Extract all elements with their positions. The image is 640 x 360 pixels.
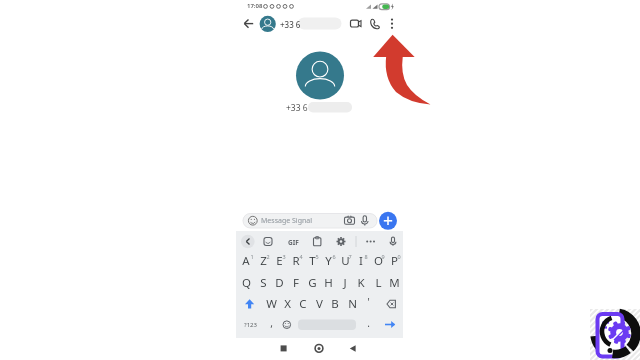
button[interactable]	[308, 339, 330, 358]
staticText: Z	[260, 253, 267, 269]
button[interactable]	[347, 15, 365, 32]
staticText: K	[357, 275, 365, 291]
button[interactable]	[386, 272, 402, 292]
staticText: +33 6	[286, 102, 308, 114]
button[interactable]	[304, 272, 320, 292]
button[interactable]	[342, 339, 364, 358]
staticText: 2	[266, 253, 270, 260]
button[interactable]	[311, 294, 327, 314]
button[interactable]	[240, 234, 256, 249]
button[interactable]	[369, 272, 385, 292]
staticText: A	[242, 253, 250, 269]
button[interactable]	[295, 294, 311, 314]
staticText: M	[389, 275, 400, 291]
button[interactable]	[243, 213, 377, 228]
staticText: 4	[299, 253, 303, 260]
staticText: 17:08	[247, 2, 263, 10]
button[interactable]	[285, 234, 301, 249]
staticText: H	[324, 275, 333, 291]
staticText: 5	[315, 253, 319, 260]
button[interactable]	[272, 339, 294, 358]
staticText: X	[284, 296, 291, 312]
button[interactable]	[255, 251, 271, 271]
staticText: Q	[242, 275, 251, 291]
staticText: D	[275, 275, 284, 291]
staticText: 7	[348, 253, 352, 260]
button[interactable]	[279, 294, 295, 314]
staticText: N	[348, 296, 357, 312]
staticText: E	[276, 253, 283, 269]
staticText: .	[367, 316, 370, 330]
staticText: 9	[381, 253, 385, 260]
staticText: '	[367, 295, 370, 309]
staticText: C	[299, 296, 307, 312]
staticText: 3	[282, 253, 286, 260]
staticText: 8	[364, 253, 368, 260]
staticText: O	[374, 253, 383, 269]
staticText: P	[391, 253, 398, 269]
button[interactable]	[263, 315, 278, 334]
button[interactable]	[320, 272, 336, 292]
button[interactable]	[360, 315, 375, 334]
staticText: Message Signal	[261, 216, 313, 226]
staticText: 0	[397, 253, 401, 260]
button[interactable]	[271, 272, 287, 292]
button[interactable]	[385, 15, 399, 32]
staticText: B	[331, 296, 339, 312]
staticText: GIF	[288, 238, 299, 247]
staticText: G	[308, 275, 317, 291]
button[interactable]	[304, 251, 320, 271]
button[interactable]	[367, 15, 385, 32]
staticText: J	[343, 275, 347, 291]
staticText: S	[260, 275, 267, 291]
button[interactable]	[362, 234, 378, 249]
staticText: 6	[332, 253, 336, 260]
button[interactable]	[309, 234, 325, 249]
button[interactable]	[344, 294, 360, 314]
button[interactable]	[320, 251, 336, 271]
button[interactable]	[255, 272, 271, 292]
staticText: L	[375, 275, 382, 291]
button[interactable]	[298, 319, 356, 330]
button[interactable]	[337, 251, 353, 271]
staticText: I	[359, 253, 363, 269]
button[interactable]	[260, 234, 276, 249]
button[interactable]	[279, 315, 294, 334]
staticText: 1	[250, 253, 254, 260]
button[interactable]	[327, 294, 343, 314]
staticText: ?123	[244, 321, 257, 329]
button[interactable]	[353, 251, 369, 271]
staticText: Y	[325, 253, 332, 269]
button[interactable]	[385, 234, 401, 249]
button[interactable]	[381, 315, 399, 334]
staticText: ,	[270, 316, 273, 330]
button[interactable]	[287, 272, 303, 292]
button[interactable]	[271, 251, 287, 271]
staticText: W	[266, 296, 277, 312]
button[interactable]	[379, 212, 397, 230]
button[interactable]	[337, 272, 353, 292]
button[interactable]	[386, 251, 402, 271]
button[interactable]	[382, 294, 401, 314]
button[interactable]	[241, 294, 258, 314]
staticText: V	[316, 296, 323, 312]
staticText: U	[341, 253, 350, 269]
staticText: T	[309, 253, 316, 269]
button[interactable]	[238, 272, 254, 292]
button[interactable]	[287, 251, 303, 271]
staticText: +33 6	[280, 19, 301, 30]
staticText: R	[292, 253, 300, 269]
button[interactable]	[369, 251, 385, 271]
button[interactable]	[238, 251, 254, 271]
button[interactable]	[333, 234, 349, 249]
button[interactable]	[241, 315, 258, 334]
button[interactable]	[263, 294, 279, 314]
button[interactable]	[353, 272, 369, 292]
staticText: F	[293, 275, 299, 291]
button[interactable]	[240, 15, 258, 33]
